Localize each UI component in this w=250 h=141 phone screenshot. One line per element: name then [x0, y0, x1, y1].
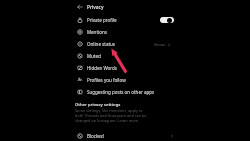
button[interactable]: Private profile toggle	[160, 17, 174, 23]
other: Back	[77, 4, 83, 10]
staticText: Blocked	[87, 133, 104, 139]
button[interactable]: Suggesting posts on other apps	[0, 86, 250, 98]
staticText: Profiles you follow	[87, 77, 126, 83]
staticText: Private profile	[87, 17, 117, 23]
staticText: Muted	[87, 53, 101, 59]
button[interactable]: Mentions	[0, 26, 250, 38]
staticText: Shown	[154, 42, 166, 47]
staticText: Mentions	[87, 29, 107, 35]
button[interactable]: Private profile	[0, 14, 250, 26]
staticText: Online status	[87, 41, 115, 47]
button[interactable]: Online status	[0, 38, 250, 50]
staticText: Some settings, like mentions, apply to b…	[75, 108, 148, 123]
staticText: Other privacy settings	[75, 102, 121, 108]
staticText: Privacy	[87, 4, 104, 10]
button[interactable]: Profiles you follow	[0, 74, 250, 86]
staticText: Hidden Words	[87, 65, 118, 71]
staticText: Suggesting posts on other apps	[87, 89, 155, 95]
button[interactable]: Muted	[0, 50, 250, 62]
button[interactable]: Blocked	[0, 130, 250, 141]
button[interactable]: Hidden Words	[0, 62, 250, 74]
button[interactable]: Back	[0, 0, 250, 13]
